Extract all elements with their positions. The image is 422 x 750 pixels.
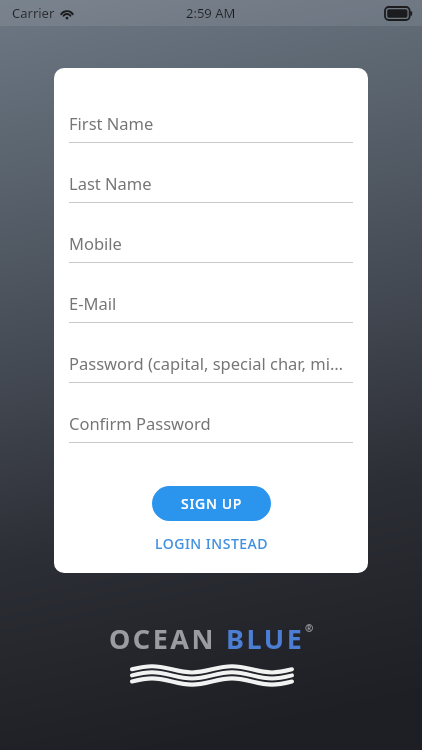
staticText: Last Name [69, 172, 152, 194]
staticText: Mobile [69, 232, 122, 254]
button[interactable]: Last Name [69, 159, 353, 219]
staticText: OCEAN [109, 620, 226, 657]
button[interactable]: First Name [69, 99, 353, 159]
button[interactable]: E-Mail [69, 279, 353, 339]
button[interactable]: Password (capital, special char, min 8) [69, 339, 353, 399]
staticText: Carrier [12, 4, 55, 22]
staticText: LOGIN INSTEAD [155, 534, 268, 553]
button[interactable]: Mobile [69, 219, 353, 279]
staticText: Confirm Password [69, 412, 211, 434]
other: Battery full [385, 7, 413, 20]
button[interactable]: LOGIN INSTEAD [145, 529, 278, 558]
staticText: First Name [69, 112, 154, 134]
button[interactable]: SIGN UP [152, 486, 271, 521]
staticText: E-Mail [69, 292, 117, 314]
staticText: Password (capital, special char, min 8) [69, 352, 353, 374]
staticText: ® [305, 621, 314, 635]
staticText: 2:59 AM [186, 4, 236, 22]
staticText: SIGN UP [181, 494, 243, 513]
button[interactable]: Confirm Password [69, 399, 353, 459]
staticText: BLUE [226, 620, 305, 657]
other: Wi-Fi signal [60, 8, 74, 19]
